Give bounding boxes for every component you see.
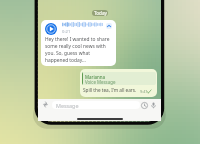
button[interactable]: Stickers bbox=[140, 101, 149, 110]
staticText: Today bbox=[94, 10, 107, 16]
button[interactable]: Play voice message bbox=[41, 20, 116, 66]
button[interactable]: Record voice message bbox=[149, 101, 158, 110]
button[interactable]: Play voice message bbox=[45, 23, 57, 35]
staticText: Spill the tea, I'm all ears. bbox=[83, 87, 137, 93]
staticText: 9:41 bbox=[140, 89, 148, 94]
staticText: Voice Message bbox=[85, 79, 116, 85]
staticText: Message bbox=[56, 102, 79, 109]
staticText: Hey there! I wanted to share some really… bbox=[45, 36, 110, 64]
staticText: 0:21 bbox=[62, 29, 71, 35]
button[interactable]: Message bbox=[52, 101, 140, 109]
staticText: Marianna bbox=[85, 74, 106, 80]
button[interactable]: Collapse bbox=[106, 23, 112, 29]
button[interactable]: Marianna bbox=[80, 69, 157, 97]
button[interactable]: Attach bbox=[41, 100, 50, 109]
